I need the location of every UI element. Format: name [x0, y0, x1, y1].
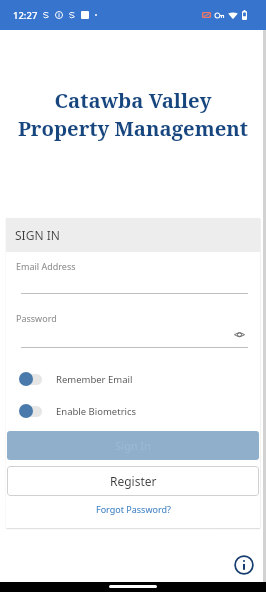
staticText: Password	[16, 312, 57, 324]
staticText: Email Address	[16, 260, 76, 272]
staticText: Register	[110, 473, 157, 489]
staticText: Enable Biometrics	[56, 405, 137, 418]
staticText: Sign In	[115, 438, 151, 453]
button[interactable]: Enable Biometrics	[19, 404, 260, 418]
staticText: SIGN IN	[15, 227, 60, 243]
staticText: Catawba Valley Property Management	[4, 86, 262, 142]
staticText: 12:27	[13, 9, 38, 22]
button[interactable]: Information	[234, 555, 254, 575]
button[interactable]: Show password	[229, 326, 249, 346]
staticText: Remember Email	[56, 373, 133, 386]
staticText: Forgot Password?	[96, 503, 171, 515]
button[interactable]: Forgot Password?	[90, 500, 177, 518]
button[interactable]: Remember Email	[19, 372, 260, 386]
button[interactable]: Register	[7, 466, 259, 496]
